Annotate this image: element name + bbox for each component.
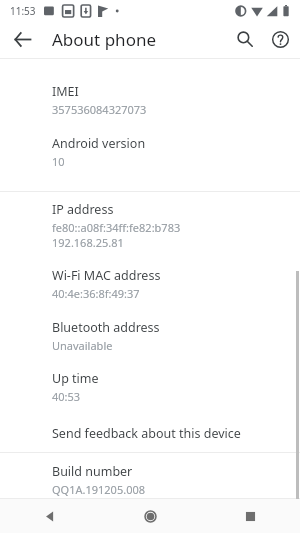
staticText: 10 [52, 154, 65, 169]
staticText: Android version [52, 135, 146, 152]
staticText: fe80::a08f:34ff:fe82:b783 [52, 220, 181, 235]
button[interactable]: Recent apps [200, 499, 300, 533]
staticText: Bluetooth address [52, 319, 160, 336]
button[interactable]: Bluetooth address [0, 319, 300, 353]
staticText: IMEI [52, 83, 79, 100]
staticText: Send feedback about this device [52, 425, 241, 442]
staticText: 11:53 [10, 4, 36, 18]
staticText: 192.168.25.81 [52, 235, 124, 250]
staticText: IP address [52, 201, 114, 218]
button[interactable]: Back [6, 23, 38, 55]
button[interactable]: IP address [0, 201, 300, 250]
staticText: Wi-Fi MAC address [52, 267, 161, 284]
button[interactable]: Back [0, 499, 100, 533]
button[interactable]: Up time [0, 370, 300, 404]
button[interactable]: Wi-Fi MAC address [0, 267, 300, 301]
staticText: 357536084327073 [52, 102, 147, 117]
staticText: Build number [52, 463, 133, 480]
button[interactable]: IMEI [0, 83, 300, 117]
staticText: Up time [52, 370, 99, 387]
staticText: QQ1A.191205.008 [52, 482, 146, 497]
button[interactable]: Help [264, 23, 296, 55]
button[interactable]: Send feedback about this device [0, 423, 300, 452]
staticText: About phone [52, 28, 157, 51]
button[interactable]: Android version [0, 135, 300, 169]
staticText: 40:4e:36:8f:49:37 [52, 286, 140, 301]
button[interactable]: Home [100, 499, 200, 533]
button[interactable]: Build number [0, 463, 300, 497]
button[interactable]: Search [229, 23, 261, 55]
staticText: Unavailable [52, 338, 113, 353]
staticText: 40:53 [52, 389, 81, 404]
